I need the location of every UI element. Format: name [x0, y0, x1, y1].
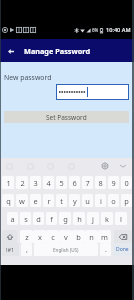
staticText: English (US) [53, 247, 79, 253]
staticText: x [38, 232, 42, 242]
button[interactable]: Symbols [2, 243, 19, 256]
button[interactable]: t [56, 194, 67, 207]
button[interactable]: Collapse [120, 164, 126, 168]
button[interactable]: g [59, 212, 71, 225]
button[interactable]: Period [100, 243, 111, 256]
staticText: 9 [111, 178, 116, 188]
button[interactable]: Suggestion [47, 163, 54, 170]
button[interactable]: Backspace [114, 230, 132, 243]
staticText: y [73, 196, 77, 206]
button[interactable]: o [108, 194, 119, 207]
button[interactable]: 2 [16, 176, 28, 189]
button[interactable]: y [69, 194, 80, 207]
staticText: p [124, 196, 129, 206]
button[interactable]: f [46, 212, 57, 225]
staticText: 5 [59, 178, 64, 188]
staticText: 3 [33, 178, 38, 188]
button[interactable]: u [82, 194, 93, 207]
button[interactable]: r [43, 194, 54, 207]
button[interactable]: Set Password [4, 111, 129, 123]
button[interactable]: 1 [2, 176, 14, 189]
staticText: Set Password [46, 113, 87, 122]
staticText: , [26, 245, 28, 255]
button[interactable]: 6 [69, 176, 80, 189]
button[interactable]: Space [34, 243, 98, 256]
button[interactable] [56, 84, 129, 100]
button[interactable]: v [59, 230, 72, 243]
button[interactable]: 5 [56, 176, 67, 189]
staticText: 6 [72, 178, 77, 188]
button[interactable]: Back [5, 45, 17, 57]
staticText: Manage Password [24, 46, 90, 56]
staticText: Done [116, 246, 129, 253]
button[interactable]: l [115, 212, 127, 225]
button[interactable]: Comma [21, 243, 32, 256]
button[interactable]: Keyboard settings [101, 162, 109, 170]
staticText: o [111, 196, 116, 206]
button[interactable]: Suggestion [27, 163, 34, 170]
staticText: t [60, 196, 63, 206]
button[interactable]: a [7, 212, 18, 225]
button[interactable]: b [72, 230, 85, 243]
button[interactable]: Shift [2, 230, 17, 243]
staticText: 1 [6, 178, 11, 188]
staticText: l [120, 214, 122, 224]
staticText: e [33, 196, 38, 206]
staticText: j [92, 214, 94, 224]
button[interactable]: x [33, 230, 46, 243]
staticText: c [51, 232, 55, 242]
button[interactable]: Suggestion [68, 163, 75, 170]
staticText: a [10, 214, 15, 224]
staticText: 4 [46, 178, 51, 188]
staticText: New password [4, 73, 52, 82]
staticText: w [19, 196, 25, 206]
button[interactable]: Suggestion [6, 163, 13, 170]
button[interactable]: Done [113, 243, 132, 256]
button[interactable]: h [73, 212, 85, 225]
staticText: q [6, 196, 11, 206]
staticText: b [76, 232, 81, 242]
button[interactable]: p [121, 194, 132, 207]
staticText: k [105, 214, 109, 224]
staticText: v [64, 232, 68, 242]
staticText: i [100, 196, 102, 206]
button[interactable]: z [20, 230, 33, 243]
button[interactable]: m [98, 230, 111, 243]
staticText: g [63, 214, 68, 224]
button[interactable]: 7 [82, 176, 93, 189]
staticText: h [77, 214, 82, 224]
button[interactable]: d [33, 212, 44, 225]
staticText: . [105, 245, 107, 255]
staticText: m [101, 232, 108, 242]
button[interactable]: c [46, 230, 59, 243]
button[interactable]: j [87, 212, 99, 225]
staticText: 6% [92, 27, 99, 33]
staticText: n [89, 232, 94, 242]
staticText: 0 [124, 178, 129, 188]
staticText: d [36, 214, 41, 224]
staticText: 10:40 AM [106, 26, 131, 34]
staticText: !#1 [6, 246, 15, 253]
staticText: 2 [20, 178, 25, 188]
button[interactable]: k [101, 212, 113, 225]
button[interactable]: 9 [108, 176, 119, 189]
staticText: s [24, 214, 28, 224]
button[interactable]: q [2, 194, 14, 207]
staticText: r [47, 196, 51, 206]
button[interactable]: 3 [30, 176, 41, 189]
staticText: 7 [85, 178, 90, 188]
button[interactable]: 4 [43, 176, 54, 189]
staticText: 8 [98, 178, 103, 188]
button[interactable]: 8 [95, 176, 106, 189]
button[interactable]: s [20, 212, 31, 225]
button[interactable]: w [16, 194, 28, 207]
staticText: z [25, 232, 29, 242]
button[interactable]: e [30, 194, 41, 207]
staticText: u [85, 196, 90, 206]
button[interactable]: 0 [121, 176, 132, 189]
button[interactable]: i [95, 194, 106, 207]
staticText: f [50, 214, 53, 224]
button[interactable]: n [85, 230, 98, 243]
